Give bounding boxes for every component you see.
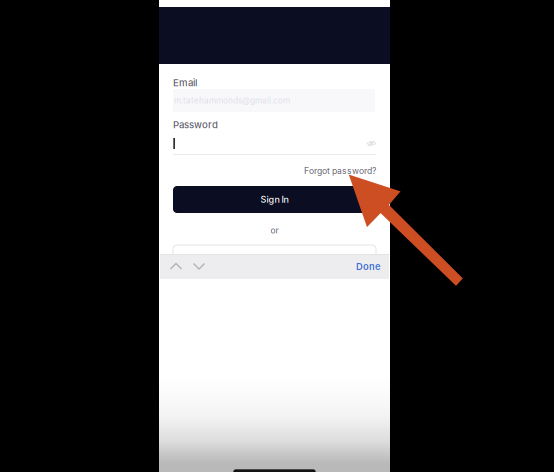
button[interactable]: Previous field: [165, 254, 187, 279]
staticText: Sign In: [260, 194, 288, 205]
staticText: Forgot password?: [304, 166, 376, 176]
button[interactable]: Show password: [362, 135, 380, 151]
staticText: Password: [173, 119, 218, 131]
staticText: m.tatehammonds@gmail.com: [174, 95, 290, 105]
button[interactable]: Forgot password?: [173, 165, 376, 177]
button[interactable]: Next field: [188, 254, 210, 279]
staticText: or: [270, 225, 278, 236]
staticText: Done: [356, 261, 381, 272]
button[interactable]: Done: [337, 254, 381, 279]
button[interactable]: Continue with another method: [173, 245, 376, 272]
button[interactable]: Sign In: [173, 186, 376, 213]
staticText: Email: [173, 77, 197, 89]
